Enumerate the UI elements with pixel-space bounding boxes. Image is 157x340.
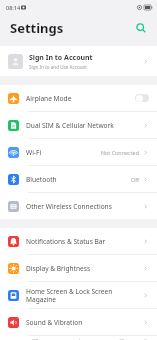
staticText: Airplane Mode xyxy=(26,94,135,103)
button[interactable]: Bluetooth xyxy=(0,166,157,192)
staticText: Not Connected xyxy=(101,149,139,156)
staticText: Home Screen & Lock Screen Magazine xyxy=(26,287,142,304)
staticText: Notifications & Status Bar xyxy=(26,237,142,246)
button[interactable]: Dual SIM & Cellular Network xyxy=(0,112,157,138)
button[interactable]: Airplane Mode xyxy=(0,85,157,111)
staticText: Sign In to Account xyxy=(29,53,93,63)
staticText: Dual SIM & Cellular Network xyxy=(26,121,142,130)
staticText: Other Wireless Connections xyxy=(26,202,142,211)
button[interactable]: Home Screen & Lock Screen Magazine xyxy=(0,282,157,308)
staticText: Sign In to and Use Account xyxy=(29,64,88,70)
staticText: 08:14 xyxy=(6,4,21,11)
button[interactable]: Do Not Disturb xyxy=(0,336,157,340)
staticText: Bluetooth xyxy=(26,175,131,184)
button[interactable]: Airplane mode toggle xyxy=(135,94,149,102)
button[interactable]: Other Wireless Connections xyxy=(0,193,157,219)
staticText: Sound & Vibration xyxy=(26,318,142,327)
button[interactable]: Sign In to Account xyxy=(0,46,157,76)
button[interactable]: Notifications & Status Bar xyxy=(0,228,157,254)
staticText: Off xyxy=(131,176,139,183)
button[interactable]: Display & Brightness xyxy=(0,255,157,281)
button[interactable]: Search settings xyxy=(131,18,151,38)
staticText: Settings xyxy=(10,19,64,37)
button[interactable]: Sound & Vibration xyxy=(0,309,157,335)
staticText: Display & Brightness xyxy=(26,264,142,273)
staticText: Wi-Fi xyxy=(26,148,101,157)
button[interactable]: Wi-Fi xyxy=(0,139,157,165)
